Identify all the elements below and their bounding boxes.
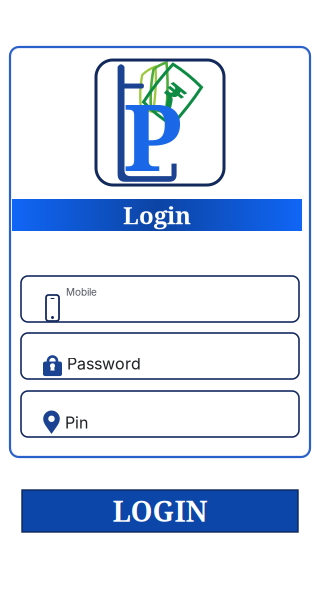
staticText: Pin [65,413,88,432]
staticText: ₹ [161,78,183,115]
staticText: Mobile [66,286,97,298]
button[interactable]: LOGIN [22,490,298,532]
staticText: P [123,73,182,198]
staticText: LOGIN [112,492,207,530]
staticText: Login [123,199,191,231]
button[interactable]: Pin [21,391,299,437]
staticText: Password [67,354,141,373]
button[interactable]: Password [21,333,299,379]
button[interactable]: Mobile [21,276,299,322]
